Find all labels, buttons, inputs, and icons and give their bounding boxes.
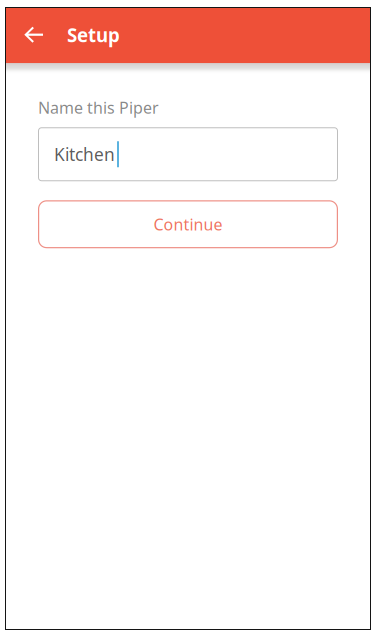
button[interactable]: Continue — [38, 200, 338, 248]
staticText: Setup — [67, 23, 120, 47]
button[interactable]: Back — [11, 11, 56, 59]
staticText: Name this Piper — [38, 97, 159, 118]
button[interactable]: Kitchen — [38, 127, 338, 181]
staticText: Continue — [153, 214, 222, 235]
staticText: Kitchen — [54, 143, 115, 166]
